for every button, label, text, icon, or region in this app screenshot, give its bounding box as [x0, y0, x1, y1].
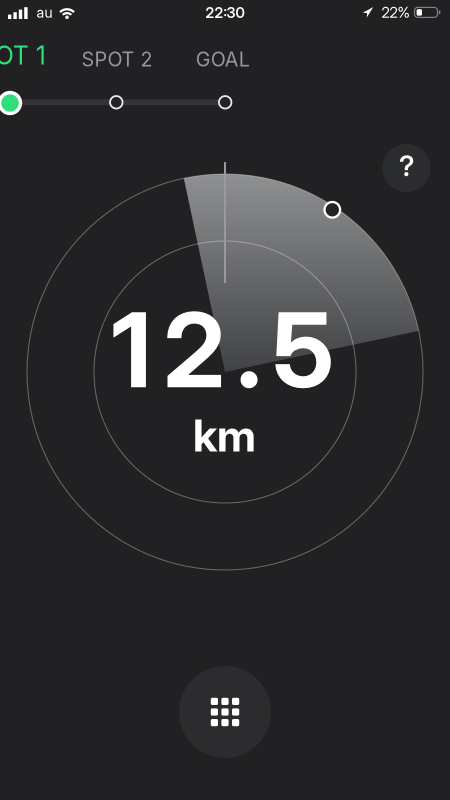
- button[interactable]: SPOT 2: [69, 49, 165, 69]
- button[interactable]: SPOT 1: [0, 43, 59, 67]
- button[interactable]: GOAL: [175, 49, 271, 69]
- staticText: GOAL: [196, 47, 250, 71]
- staticText: SPOT 1: [0, 41, 46, 70]
- staticText: 22%: [382, 4, 410, 21]
- button[interactable]: Menu: [179, 666, 271, 758]
- button[interactable]: Help: [382, 144, 430, 192]
- staticText: SPOT 2: [81, 47, 152, 71]
- staticText: au: [37, 4, 53, 21]
- staticText: 12.5: [111, 289, 333, 410]
- staticText: ?: [399, 149, 414, 182]
- staticText: 22:30: [205, 4, 244, 21]
- staticText: km: [193, 409, 256, 461]
